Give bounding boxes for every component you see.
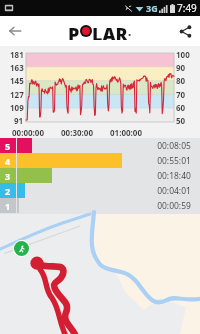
staticText: 5 <box>5 140 11 152</box>
staticText: 181 <box>10 49 24 60</box>
staticText: 00:08:05 <box>157 140 191 152</box>
staticText: P <box>68 22 80 40</box>
staticText: 01:00:00 <box>110 127 142 138</box>
staticText: 70 <box>176 89 186 100</box>
staticText: 1 <box>5 200 11 212</box>
button[interactable]: 1 <box>0 198 200 213</box>
staticText: 60 <box>176 102 186 113</box>
button[interactable]: Start point <box>13 240 30 257</box>
button[interactable]: Route map <box>0 214 200 334</box>
staticText: 90 <box>176 62 186 73</box>
button[interactable]: 2 <box>0 183 200 198</box>
staticText: 00:30:00 <box>61 127 93 138</box>
staticText: 50 <box>176 115 186 126</box>
staticText: 7:49 <box>177 1 197 15</box>
button[interactable]: 4 <box>0 153 200 168</box>
staticText: 3 <box>5 170 11 182</box>
staticText: LAR <box>92 22 128 40</box>
staticText: 4 <box>5 155 11 167</box>
staticText: 2 <box>5 185 11 197</box>
staticText: 145 <box>10 75 24 86</box>
staticText: 00:00:59 <box>157 200 191 212</box>
staticText: 163 <box>10 62 24 73</box>
staticText: 00:55:01 <box>157 155 191 167</box>
staticText: 109 <box>10 102 24 113</box>
staticText: . <box>128 24 132 39</box>
staticText: 80 <box>176 75 186 86</box>
staticText: 91 <box>14 115 24 126</box>
button[interactable]: Share <box>170 16 200 46</box>
staticText: 00:04:01 <box>157 185 191 197</box>
button[interactable]: 3 <box>0 168 200 183</box>
staticText: 3G <box>146 2 158 14</box>
button[interactable]: Back <box>0 16 30 46</box>
staticText: 00:00:00 <box>12 127 44 138</box>
staticText: 100 <box>176 49 190 60</box>
button[interactable]: 5 <box>0 138 200 153</box>
staticText: 127 <box>10 89 24 100</box>
staticText: 00:18:40 <box>157 170 191 182</box>
